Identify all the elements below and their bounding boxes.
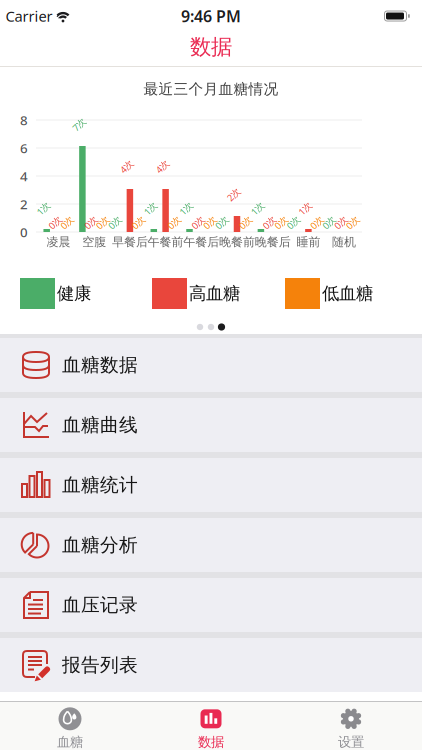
staticText: 血糖统计 <box>62 473 138 496</box>
staticText: 8 <box>20 111 28 129</box>
staticText: 血糖数据 <box>62 353 138 376</box>
staticText: 0 <box>20 223 28 241</box>
staticText: 空腹 <box>82 235 106 249</box>
staticText: 报告列表 <box>62 653 138 676</box>
staticText: 0次 <box>262 216 276 229</box>
staticText: 1次 <box>298 202 312 215</box>
staticText: 1次 <box>179 202 193 215</box>
staticText: 1次 <box>36 202 50 215</box>
staticText: 0次 <box>310 216 324 229</box>
staticText: 数据 <box>198 734 224 750</box>
staticText: 高血糖 <box>189 283 240 304</box>
staticText: 午餐前 <box>148 235 184 249</box>
staticText: 0次 <box>345 216 359 229</box>
staticText: 晚餐后 <box>255 235 291 249</box>
staticText: 9:46 PM <box>181 5 241 27</box>
staticText: 1次 <box>250 202 264 215</box>
button[interactable]: 设置 <box>301 704 401 750</box>
staticText: 4次 <box>155 160 169 173</box>
button[interactable]: 血糖数据 <box>0 338 422 392</box>
staticText: 数据 <box>190 34 232 60</box>
staticText: 午餐后 <box>183 235 219 249</box>
staticText: 晚餐前 <box>219 235 255 249</box>
staticText: 0次 <box>131 216 145 229</box>
staticText: 0次 <box>84 216 98 229</box>
staticText: 1次 <box>143 202 157 215</box>
staticText: 血糖分析 <box>62 533 138 556</box>
button[interactable]: 血压记录 <box>0 578 422 632</box>
staticText: 0次 <box>108 216 122 229</box>
staticText: 凌晨 <box>46 235 70 249</box>
staticText: 0次 <box>167 216 181 229</box>
staticText: 低血糖 <box>322 283 373 304</box>
staticText: 早餐后 <box>112 235 148 249</box>
button[interactable]: 血糖统计 <box>0 458 422 512</box>
staticText: 随机 <box>332 235 356 249</box>
staticText: 0次 <box>215 216 229 229</box>
staticText: 0次 <box>60 216 74 229</box>
button[interactable]: 报告列表 <box>0 638 422 692</box>
staticText: 血糖曲线 <box>62 413 138 436</box>
button[interactable]: 数据 <box>161 704 261 750</box>
staticText: 血糖 <box>57 734 83 750</box>
button[interactable]: 血糖分析 <box>0 518 422 572</box>
staticText: 7次 <box>72 118 86 131</box>
staticText: 睡前 <box>296 235 320 249</box>
staticText: 健康 <box>57 283 91 304</box>
staticText: Carrier <box>5 6 52 26</box>
staticText: 血压记录 <box>62 593 138 616</box>
staticText: 0次 <box>203 216 217 229</box>
staticText: 0次 <box>95 216 109 229</box>
staticText: 0次 <box>274 216 288 229</box>
staticText: 0次 <box>286 216 300 229</box>
staticText: 设置 <box>338 734 364 750</box>
staticText: 0次 <box>334 216 348 229</box>
staticText: 0次 <box>238 216 252 229</box>
staticText: 0次 <box>191 216 205 229</box>
staticText: 0次 <box>48 216 62 229</box>
staticText: 4 <box>20 167 28 185</box>
staticText: 4次 <box>119 160 133 173</box>
staticText: 0次 <box>322 216 336 229</box>
button[interactable]: 血糖 <box>20 704 120 750</box>
staticText: 6 <box>20 139 28 157</box>
staticText: 2次 <box>226 188 240 201</box>
button[interactable]: 血糖曲线 <box>0 398 422 452</box>
staticText: 2 <box>20 195 28 213</box>
staticText: 最近三个月血糖情况 <box>143 80 278 98</box>
